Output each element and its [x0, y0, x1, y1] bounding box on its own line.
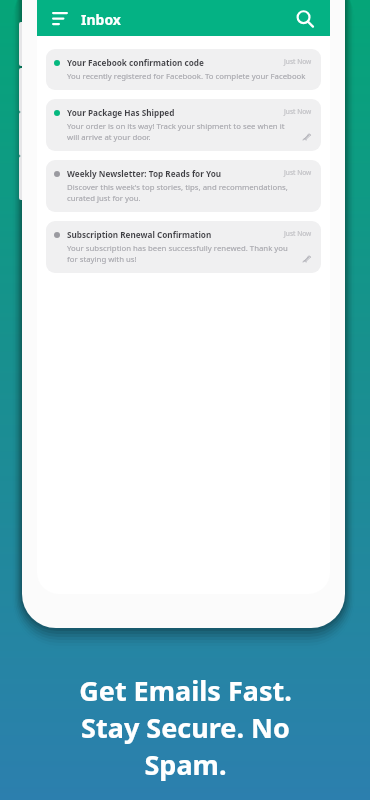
staticText: Your order is on its way! Track your shi…	[67, 121, 285, 132]
staticText: Discover this week's top stories, tips, …	[67, 182, 288, 193]
staticText: Stay Secure. No	[81, 709, 290, 746]
staticText: Just Now	[284, 229, 312, 238]
staticText: for staying with us!	[67, 254, 137, 265]
staticText: will arrive at your door.	[67, 132, 151, 143]
staticText: Your Facebook confirmation code	[67, 57, 204, 68]
staticText: Inbox	[81, 10, 121, 29]
staticText: Just Now	[284, 57, 312, 66]
staticText: Your subscription has been successfully …	[67, 243, 288, 254]
button[interactable]: Menu	[47, 6, 73, 32]
other: Attachment	[302, 133, 312, 143]
staticText: Just Now	[284, 107, 312, 116]
button[interactable]: Search	[292, 6, 318, 32]
button[interactable]: Your Facebook confirmation code	[46, 49, 321, 90]
staticText: Weekly Newsletter: Top Reads for You	[67, 168, 222, 179]
staticText: Your Package Has Shipped	[67, 107, 175, 118]
button[interactable]: Subscription Renewal Confirmation	[46, 221, 321, 273]
staticText: You recently registered for Facebook. To…	[67, 71, 306, 82]
staticText: Subscription Renewal Confirmation	[67, 229, 212, 240]
button[interactable]: Your Package Has Shipped	[46, 99, 321, 151]
staticText: Spam.	[144, 746, 227, 783]
button[interactable]: Weekly Newsletter: Top Reads for You	[46, 160, 321, 212]
staticText: Just Now	[284, 168, 312, 177]
other: Attachment	[302, 255, 312, 265]
staticText: Get Emails Fast.	[79, 672, 292, 709]
staticText: curated just for you.	[67, 193, 141, 204]
